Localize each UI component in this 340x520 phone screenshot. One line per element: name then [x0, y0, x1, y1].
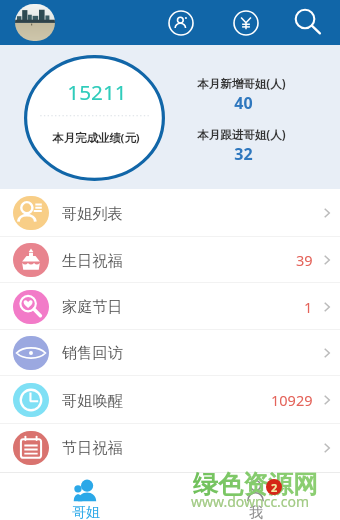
- button[interactable]: Commission: [232, 0, 260, 45]
- staticText: 32: [234, 143, 253, 165]
- staticText: 销售回访: [62, 343, 123, 362]
- button[interactable]: Contacts: [167, 0, 195, 45]
- staticText: 家庭节日: [62, 297, 123, 316]
- staticText: 生日祝福: [62, 251, 123, 270]
- staticText: 1: [304, 297, 313, 317]
- staticText: 15211: [67, 78, 127, 106]
- staticText: 本月新增哥姐(人): [197, 76, 286, 92]
- staticText: 本月完成业绩(元): [52, 130, 140, 146]
- button[interactable]: 我: [170, 472, 340, 520]
- button[interactable]: 哥姐唤醒: [0, 376, 340, 424]
- button[interactable]: 销售回访: [0, 329, 340, 376]
- button[interactable]: Search: [291, 0, 323, 45]
- staticText: 哥姐列表: [62, 204, 123, 223]
- button[interactable]: 生日祝福: [0, 237, 340, 283]
- staticText: 10929: [271, 390, 313, 410]
- button[interactable]: 家庭节日: [0, 283, 340, 330]
- button[interactable]: 哥姐: [0, 472, 170, 520]
- button[interactable]: 哥姐列表: [0, 189, 340, 237]
- staticText: 绿色资源网: [193, 469, 318, 500]
- staticText: 哥姐唤醒: [62, 391, 123, 410]
- button[interactable]: Profile photo: [15, 4, 55, 41]
- staticText: 哥姐: [72, 504, 100, 520]
- staticText: 我: [249, 504, 263, 520]
- button[interactable]: 节日祝福: [0, 424, 340, 471]
- staticText: www.downcc.com: [191, 492, 310, 511]
- staticText: 40: [234, 92, 253, 114]
- staticText: 2: [271, 480, 278, 495]
- staticText: 节日祝福: [62, 438, 123, 457]
- staticText: 本月跟进哥姐(人): [197, 127, 286, 143]
- staticText: 39: [296, 250, 313, 270]
